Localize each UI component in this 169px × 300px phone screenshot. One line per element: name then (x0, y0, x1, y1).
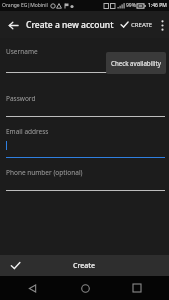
staticText: Username (6, 47, 38, 56)
button[interactable]: Back (12, 276, 52, 300)
button[interactable]: Email address (0, 117, 169, 158)
button[interactable]: More options (155, 12, 169, 38)
button[interactable]: Phone number (optional) (0, 158, 169, 191)
button[interactable]: Back (0, 12, 26, 38)
staticText: Create a new account (26, 19, 118, 31)
staticText: Orange EG|Mobinil (2, 2, 48, 9)
button[interactable]: Home (65, 276, 105, 300)
staticText: CREATE (131, 21, 153, 29)
staticText: 1:46 PM (148, 2, 167, 9)
staticText: Check availability (111, 59, 161, 67)
button[interactable]: Password (0, 84, 169, 117)
button[interactable]: CREATE (118, 20, 155, 29)
button[interactable]: Recent apps (117, 276, 157, 300)
staticText: 99% (126, 2, 136, 9)
staticText: Email address (6, 127, 49, 136)
staticText: Create (10, 261, 158, 271)
staticText: Password (6, 94, 36, 103)
staticText: Phone number (optional) (6, 168, 83, 177)
button[interactable]: Create (0, 255, 169, 276)
button[interactable]: Check availability (106, 52, 166, 74)
